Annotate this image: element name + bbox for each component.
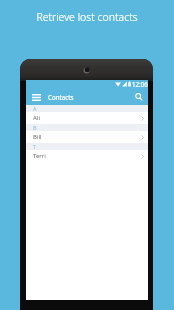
button[interactable]: Open navigation menu [29,90,43,104]
button[interactable]: Ali [26,112,148,124]
staticText: T [33,143,37,149]
staticText: 12:06 [132,80,148,88]
staticText: Terri [33,152,46,160]
button[interactable]: Search [132,90,146,104]
staticText: Contacts [48,93,74,101]
staticText: Ali [33,114,40,122]
staticText: A [33,105,37,111]
button[interactable]: Bill [26,131,148,143]
button[interactable]: Terri [26,150,148,162]
staticText: Bill [33,133,42,141]
staticText: Retrieve lost contacts [0,10,174,24]
staticText: B [33,124,37,130]
